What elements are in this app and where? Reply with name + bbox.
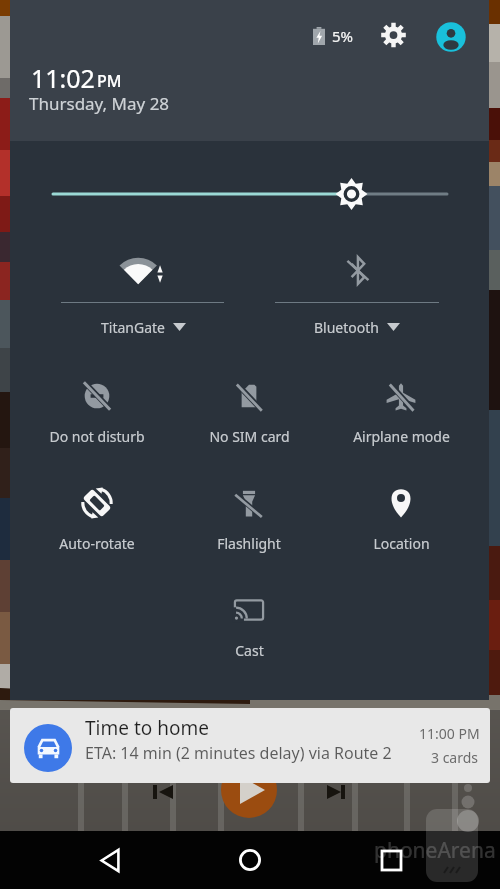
button[interactable]: Settings	[376, 18, 410, 52]
staticText: Airplane mode	[353, 427, 450, 446]
button[interactable]: Recent apps	[363, 832, 419, 888]
staticText: Auto-rotate	[59, 534, 135, 553]
button[interactable]: Back	[82, 832, 138, 888]
staticText: Thursday, May 28	[29, 92, 170, 115]
button[interactable]: TitanGate	[83, 316, 203, 338]
button[interactable]: Bluetooth	[317, 248, 397, 292]
button[interactable]: Do not disturb	[23, 368, 171, 446]
button[interactable]: Brightness	[40, 172, 460, 216]
staticText: 5%	[332, 26, 354, 46]
button[interactable]: User profile	[434, 20, 468, 54]
button[interactable]: No SIM card	[175, 368, 323, 446]
staticText: Flashlight	[217, 534, 281, 553]
button[interactable]: TitanGate	[103, 248, 183, 292]
staticText: 11:00 PM	[419, 724, 480, 743]
staticText: phoneArena	[374, 836, 496, 865]
staticText: PM	[97, 70, 122, 92]
button[interactable]: Time to home	[10, 708, 490, 783]
staticText: Time to home	[85, 715, 209, 741]
button[interactable]: Flashlight	[175, 475, 323, 553]
button[interactable]: Location	[327, 475, 475, 553]
staticText: Location	[373, 534, 430, 553]
staticText: No SIM card	[209, 427, 290, 446]
staticText: Cast	[235, 641, 264, 660]
button[interactable]: Home	[222, 832, 278, 888]
staticText: Bluetooth	[314, 318, 379, 337]
staticText: 3 cards	[431, 748, 479, 767]
button[interactable]: Battery 5 percent, charging	[313, 20, 354, 52]
button[interactable]: Cast	[175, 582, 323, 660]
button[interactable]: Airplane mode	[327, 368, 475, 446]
staticText: TitanGate	[101, 318, 165, 337]
staticText: 11:02	[31, 61, 95, 95]
button[interactable]: Auto-rotate	[23, 475, 171, 553]
button[interactable]: Bluetooth	[297, 316, 417, 338]
staticText: Do not disturb	[49, 427, 145, 446]
staticText: ETA: 14 min (2 minutes delay) via Route …	[85, 742, 392, 764]
